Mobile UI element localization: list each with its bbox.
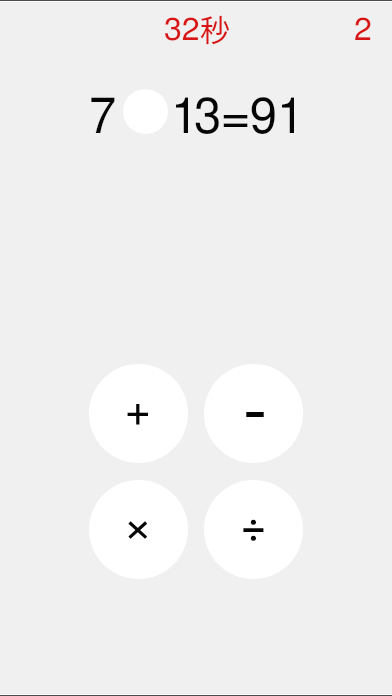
staticText: 秒: [200, 6, 230, 49]
button[interactable]: Divide: [204, 480, 303, 579]
staticText: 2: [354, 14, 372, 46]
staticText: 32: [164, 14, 200, 46]
staticText: 7: [89, 94, 117, 143]
staticText: 1: [171, 94, 199, 143]
button[interactable]: Minus: [204, 364, 303, 463]
button[interactable]: Multiply: [89, 480, 188, 579]
button[interactable]: Plus: [89, 364, 188, 463]
staticText: 3=91: [194, 94, 305, 143]
